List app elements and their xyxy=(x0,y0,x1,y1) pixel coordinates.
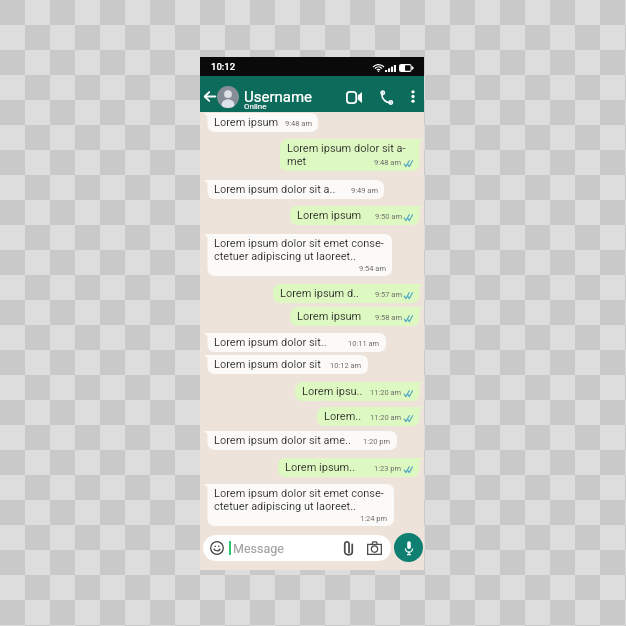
button[interactable]: Lorem ipsum d.. xyxy=(273,284,423,303)
staticText: 11:20 am xyxy=(370,388,402,397)
staticText: Username xyxy=(244,88,313,106)
button[interactable]: Camera xyxy=(367,541,382,555)
staticText: Lorem ipsum xyxy=(214,116,279,129)
staticText: 1:20 pm xyxy=(363,437,391,446)
button[interactable]: Lorem ipsum xyxy=(204,113,318,132)
staticText: 9:58 am xyxy=(375,313,402,322)
staticText: 9:49 am xyxy=(351,186,378,195)
staticText: 10:12 am xyxy=(330,361,362,370)
staticText: Lorem ipsu.. xyxy=(302,385,363,398)
staticText: 1:23 pm xyxy=(374,464,402,473)
staticText: 9:54 am xyxy=(359,264,386,273)
button[interactable]: Lorem ipsum dolor sit ame.. xyxy=(204,431,397,450)
staticText: Lorem ipsum dolor sit a.. xyxy=(214,183,336,196)
staticText: 10:12 xyxy=(211,61,236,72)
staticText: Lorem ipsum dolor sit xyxy=(214,358,321,371)
button[interactable]: Back xyxy=(203,90,216,103)
staticText: 9:57 am xyxy=(375,290,402,299)
button[interactable]: Lorem ipsum dolor sit xyxy=(204,355,368,374)
staticText: Lorem.. xyxy=(324,410,362,423)
button[interactable]: Lorem.. xyxy=(317,407,423,426)
staticText: Message xyxy=(233,541,284,556)
staticText: Lorem ipsum d.. xyxy=(280,287,360,300)
button[interactable]: Lorem ipsum xyxy=(290,206,423,225)
staticText: Lorem ipsum dolor sit a- xyxy=(287,142,406,155)
button[interactable]: Lorem ipsum dolor sit a- xyxy=(280,139,423,171)
button[interactable]: Attach file xyxy=(343,541,354,556)
button[interactable]: Lorem ipsum dolor sit emet conse- xyxy=(204,484,394,526)
button[interactable]: Video call xyxy=(346,91,362,104)
button[interactable]: Lorem ipsu.. xyxy=(295,382,423,401)
staticText: 9:48 am xyxy=(285,119,312,128)
button[interactable]: More options xyxy=(411,90,415,103)
staticText: Lorem ipsum dolor sit ame.. xyxy=(214,434,351,447)
staticText: Lorem ipsum dolor sit emet conse- xyxy=(214,487,384,500)
staticText: ctetuer adipiscing ut laoreet.. xyxy=(214,500,356,513)
button[interactable]: Record voice message xyxy=(394,533,423,562)
staticText: 11:20 am xyxy=(370,413,402,422)
button[interactable]: Call xyxy=(380,91,393,104)
staticText: 9:48 am xyxy=(374,158,401,167)
button[interactable]: Lorem ipsum xyxy=(290,307,423,326)
staticText: Lorem ipsum xyxy=(297,209,362,222)
staticText: Lorem ipsum dolor sit.. xyxy=(214,336,327,349)
staticText: 10:11 am xyxy=(348,339,380,348)
staticText: 1:24 pm xyxy=(360,514,388,523)
staticText: Online xyxy=(244,102,267,111)
staticText: Lorem ipsum dolor sit emet conse- xyxy=(214,237,384,250)
button[interactable]: Lorem ipsum dolor sit a.. xyxy=(204,180,384,199)
staticText: ctetuer adipiscing ut laoreet.. xyxy=(214,250,356,263)
button[interactable]: Lorem ipsum dolor sit.. xyxy=(204,333,386,352)
staticText: 9:50 am xyxy=(375,212,402,221)
button[interactable]: Lorem ipsum.. xyxy=(278,458,423,477)
staticText: met xyxy=(287,155,307,168)
button[interactable]: Message xyxy=(203,535,391,561)
staticText: Lorem ipsum.. xyxy=(285,461,356,474)
staticText: Lorem ipsum xyxy=(297,310,362,323)
button[interactable]: Lorem ipsum dolor sit emet conse- xyxy=(204,234,392,276)
